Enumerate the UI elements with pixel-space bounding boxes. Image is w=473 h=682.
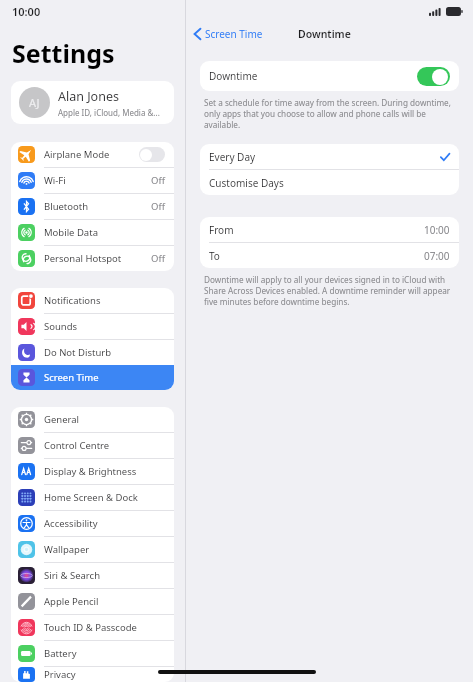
button[interactable]: General	[11, 407, 174, 432]
staticText: Display & Brightness	[44, 465, 165, 478]
staticText: 10:00	[424, 223, 450, 237]
staticText: Downtime	[209, 69, 417, 83]
staticText: AJ	[29, 95, 40, 110]
staticText: Home Screen & Dock	[44, 491, 165, 504]
button[interactable]: Home Screen & Dock	[11, 485, 174, 510]
staticText: Alan Jones	[58, 88, 119, 105]
button[interactable]: Wi-Fi	[11, 168, 174, 193]
staticText: Airplane Mode	[44, 148, 139, 161]
staticText: Set a schedule for time away from the sc…	[204, 97, 455, 130]
staticText: Siri & Search	[44, 569, 165, 582]
staticText: 10:00	[12, 4, 41, 19]
button[interactable]: From	[200, 217, 459, 242]
button[interactable]: Battery	[11, 641, 174, 666]
staticText: Mobile Data	[44, 226, 165, 239]
button[interactable]: Display & Brightness	[11, 459, 174, 484]
staticText: Sounds	[44, 320, 165, 333]
staticText: Control Centre	[44, 439, 165, 452]
button[interactable]: Apple Pencil	[11, 589, 174, 614]
staticText: Customise Days	[209, 176, 284, 190]
button[interactable]: To	[200, 243, 459, 268]
button[interactable]: Downtime toggle	[417, 67, 450, 86]
button[interactable]: Notifications	[11, 288, 174, 313]
staticText: Do Not Disturb	[44, 346, 165, 359]
staticText: Wallpaper	[44, 543, 165, 556]
button[interactable]: Screen Time	[186, 25, 269, 43]
staticText: Downtime	[298, 27, 351, 41]
staticText: Apple Pencil	[44, 595, 165, 608]
button[interactable]: AJ	[11, 81, 174, 124]
button[interactable]: Screen Time	[11, 365, 174, 390]
staticText: Every Day	[209, 150, 440, 164]
staticText: Notifications	[44, 294, 165, 307]
staticText: Apple ID, iCloud, Media &...	[58, 107, 160, 118]
button[interactable]: Mobile Data	[11, 220, 174, 245]
button[interactable]: Every Day	[200, 144, 459, 169]
button[interactable]: Personal Hotspot	[11, 246, 174, 271]
button[interactable]: Bluetooth	[11, 194, 174, 219]
button[interactable]: Do Not Disturb	[11, 340, 174, 365]
staticText: Off	[151, 200, 165, 213]
button[interactable]: Downtime	[200, 61, 459, 91]
staticText: To	[209, 249, 424, 263]
staticText: Settings	[12, 36, 115, 70]
button[interactable]: Wallpaper	[11, 537, 174, 562]
staticText: Off	[151, 252, 165, 265]
staticText: Off	[151, 174, 165, 187]
staticText: Battery	[44, 647, 165, 660]
button[interactable]: Sounds	[11, 314, 174, 339]
staticText: 07:00	[424, 249, 450, 263]
staticText: Accessibility	[44, 517, 165, 530]
staticText: From	[209, 223, 424, 237]
button[interactable]: Privacy	[11, 667, 174, 682]
staticText: Bluetooth	[44, 200, 151, 213]
button[interactable]: Customise Days	[200, 170, 459, 195]
staticText: General	[44, 413, 165, 426]
button[interactable]: Airplane Mode	[11, 142, 174, 167]
staticText: Downtime will apply to all your devices …	[204, 274, 455, 307]
button[interactable]: Siri & Search	[11, 563, 174, 588]
button[interactable]: Toggle	[139, 147, 165, 162]
staticText: Privacy	[44, 668, 165, 681]
button[interactable]: Touch ID & Passcode	[11, 615, 174, 640]
staticText: Screen Time	[205, 27, 263, 41]
staticText: Screen Time	[44, 371, 165, 384]
button[interactable]: Control Centre	[11, 433, 174, 458]
staticText: Personal Hotspot	[44, 252, 151, 265]
staticText: Touch ID & Passcode	[44, 621, 165, 634]
staticText: Wi-Fi	[44, 174, 151, 187]
button[interactable]: Accessibility	[11, 511, 174, 536]
